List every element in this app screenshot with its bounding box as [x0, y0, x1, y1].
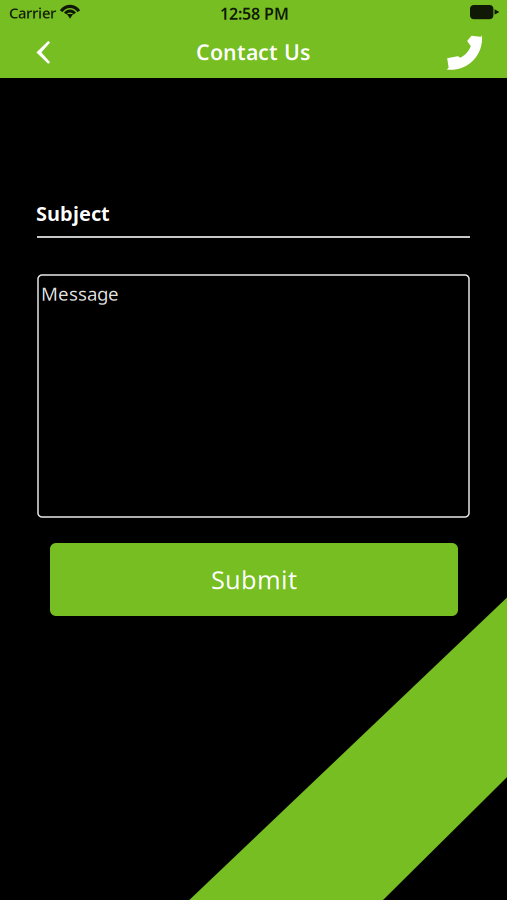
button[interactable]: Submit: [50, 543, 458, 616]
button[interactable]: Message: [38, 275, 469, 517]
button[interactable]: Subject: [37, 200, 470, 240]
staticText: Contact Us: [196, 38, 311, 66]
staticText: Submit: [211, 563, 297, 596]
staticText: Message: [41, 281, 119, 306]
button[interactable]: Back: [19, 29, 67, 77]
staticText: 12:58 PM: [220, 3, 289, 24]
staticText: Carrier: [9, 3, 56, 22]
button[interactable]: Call: [441, 28, 489, 76]
staticText: Subject: [36, 200, 110, 227]
